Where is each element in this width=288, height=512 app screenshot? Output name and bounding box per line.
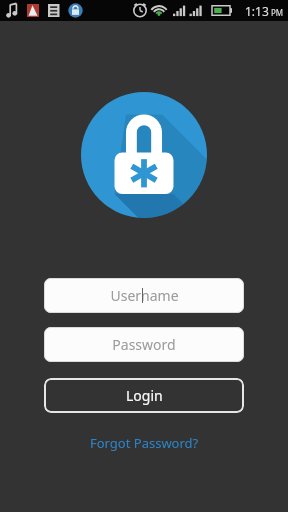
button[interactable]: Forgot Password: [84, 432, 205, 454]
staticText: Forgot Password?: [90, 434, 199, 452]
button[interactable]: Login: [44, 378, 244, 413]
staticText: 1:13: [245, 3, 269, 19]
button[interactable]: Username: [44, 278, 244, 313]
staticText: Username: [110, 286, 179, 305]
button[interactable]: Password: [44, 327, 244, 362]
staticText: PM: [271, 7, 284, 18]
staticText: Login: [126, 386, 163, 405]
staticText: Password: [112, 335, 176, 354]
